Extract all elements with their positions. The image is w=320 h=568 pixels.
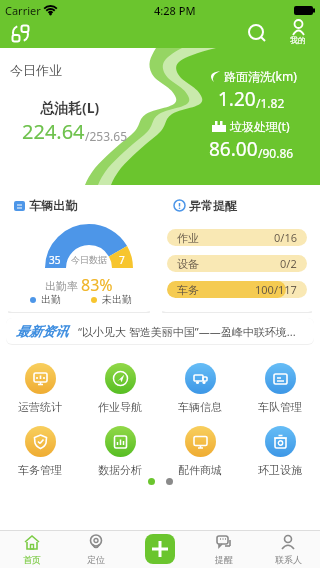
staticText: /90.86 xyxy=(258,145,294,161)
button[interactable]: 运营统计 xyxy=(0,363,80,414)
staticText: 1.20 xyxy=(218,86,256,112)
button[interactable] xyxy=(10,23,32,45)
staticText: 今日作业 xyxy=(10,62,62,78)
button[interactable]: 车辆出勤 xyxy=(6,189,152,312)
staticText: 联系人 xyxy=(275,554,302,565)
staticText: 设备 xyxy=(177,257,199,271)
button[interactable]: 车辆信息 xyxy=(160,363,240,414)
staticText: “以小见大 智造美丽中国”——盈峰中联环境... xyxy=(78,324,296,339)
staticText: 作业导航 xyxy=(98,400,142,414)
staticText: 提醒 xyxy=(215,554,233,565)
staticText: 车务管理 xyxy=(18,463,62,477)
staticText: 车辆信息 xyxy=(178,400,222,414)
staticText: 异常提醒 xyxy=(189,198,237,213)
staticText: 出勤率 xyxy=(45,278,81,293)
staticText: 0/2 xyxy=(280,256,297,271)
button[interactable]: 设备 xyxy=(167,255,307,272)
button[interactable]: 提醒 xyxy=(192,530,256,568)
button[interactable] xyxy=(246,23,268,45)
staticText: 数据分析 xyxy=(98,463,142,477)
staticText: 总油耗(L) xyxy=(40,98,100,117)
button[interactable]: 数据分析 xyxy=(80,426,160,477)
button[interactable]: 作业 xyxy=(167,229,307,246)
button[interactable]: 作业导航 xyxy=(80,363,160,414)
button[interactable]: 配件商城 xyxy=(160,426,240,477)
staticText: 35 xyxy=(49,253,61,267)
button[interactable]: 最新资讯 xyxy=(6,318,314,344)
staticText: /253.65 xyxy=(85,128,128,144)
button[interactable]: 车务 xyxy=(167,281,307,298)
staticText: 出勤 xyxy=(41,293,61,306)
staticText: 7 xyxy=(119,253,125,267)
staticText: 今日数据 xyxy=(71,254,107,265)
button[interactable]: 我的 xyxy=(283,20,313,45)
staticText: 4:28 PM xyxy=(154,3,196,18)
staticText: 最新资讯 xyxy=(16,323,68,339)
staticText: 100/117 xyxy=(255,282,297,297)
staticText: 路面清洗(km) xyxy=(224,68,297,84)
staticText: 224.64 xyxy=(22,118,85,145)
staticText: Carrier xyxy=(5,3,41,18)
staticText: 垃圾处理(t) xyxy=(230,118,290,134)
staticText: 0/16 xyxy=(274,230,297,245)
staticText: 83% xyxy=(81,274,113,296)
staticText: 首页 xyxy=(23,554,41,565)
staticText: 配件商城 xyxy=(178,463,222,477)
staticText: 车辆出勤 xyxy=(29,198,77,213)
button[interactable]: 首页 xyxy=(0,530,64,568)
staticText: 定位 xyxy=(87,554,105,565)
button[interactable]: 联系人 xyxy=(256,530,320,568)
button[interactable]: 车务管理 xyxy=(0,426,80,477)
staticText: /1.82 xyxy=(256,95,285,111)
button[interactable]: 车队管理 xyxy=(240,363,320,414)
staticText: 作业 xyxy=(177,231,199,245)
staticText: 车队管理 xyxy=(258,400,302,414)
button[interactable] xyxy=(145,534,175,564)
staticText: 我的 xyxy=(290,35,306,45)
staticText: 未出勤 xyxy=(102,293,132,306)
staticText: 车务 xyxy=(177,283,199,297)
staticText: 运营统计 xyxy=(18,400,62,414)
button[interactable]: 环卫设施 xyxy=(240,426,320,477)
button[interactable]: 异常提醒 xyxy=(160,189,314,312)
staticText: 86.00 xyxy=(209,136,258,162)
button[interactable]: 定位 xyxy=(64,530,128,568)
staticText: 环卫设施 xyxy=(258,463,302,477)
